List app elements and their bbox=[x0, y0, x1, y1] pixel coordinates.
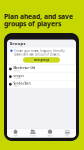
staticText: Plan ahead, and save bbox=[4, 12, 73, 21]
staticText: League 1 bbox=[13, 74, 27, 77]
staticText: Groups bbox=[30, 135, 36, 137]
button[interactable]: New group bbox=[23, 57, 60, 63]
button[interactable]: Manchester Utd bbox=[7, 65, 76, 73]
staticText: More bbox=[65, 135, 69, 137]
staticText: Sunday Stars bbox=[13, 82, 30, 85]
staticText: Manchester Utd bbox=[13, 66, 35, 70]
button[interactable]: More bbox=[59, 129, 76, 137]
staticText: 12 players bbox=[13, 77, 21, 79]
staticText: Create your teams, leagues, friendly gam… bbox=[14, 49, 64, 56]
button[interactable]: Groups bbox=[24, 129, 41, 137]
staticText: New group bbox=[33, 58, 49, 62]
button[interactable]: Sunday Stars bbox=[7, 81, 76, 88]
staticText: groups of players bbox=[4, 19, 61, 28]
staticText: Matches bbox=[47, 135, 53, 137]
staticText: Groups bbox=[9, 41, 25, 46]
button[interactable]: League 1 bbox=[7, 73, 76, 80]
staticText: Home bbox=[14, 135, 18, 137]
staticText: 8 players bbox=[13, 70, 20, 72]
button[interactable]: Matches bbox=[41, 129, 59, 137]
staticText: 6 players bbox=[13, 85, 20, 87]
button[interactable]: Home bbox=[7, 129, 24, 137]
